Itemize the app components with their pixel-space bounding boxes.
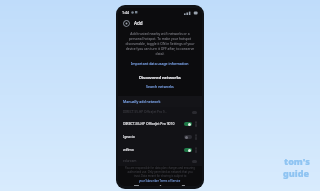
button[interactable]: Toggle on [184, 122, 192, 126]
button[interactable]: Account [122, 19, 130, 27]
staticText: Add trusted nearby wi-fi networks or a p… [125, 31, 195, 56]
button[interactable]: Manually add network [118, 96, 202, 107]
button[interactable]: your Subscriber Terms of Service [139, 179, 181, 183]
staticText: 1:44 [122, 10, 130, 15]
staticText: eduroam [123, 159, 137, 163]
staticText: Manually add network [123, 99, 161, 104]
staticText: Discovered networks [139, 75, 181, 80]
button[interactable]: DIRECT-55-HP OfficeJet Pro 9010 [118, 117, 202, 130]
button[interactable]: Toggle on [184, 148, 192, 152]
staticText: tom's [284, 155, 310, 167]
button[interactable]: Toggle off [184, 135, 192, 139]
staticText: Add [134, 20, 143, 26]
staticText: Ignacio [123, 134, 135, 139]
staticText: your Subscriber Terms of Service [139, 179, 181, 183]
staticText: guide [283, 167, 310, 179]
staticText: DIRECT-55-HP OfficeJet Pro 9010 [123, 121, 175, 126]
staticText: Important data usage information [131, 61, 189, 66]
staticText: wifimo [123, 147, 134, 152]
button[interactable]: wifimo [118, 143, 202, 156]
staticText: Search networks [146, 84, 174, 89]
button[interactable]: DIRECT-55-HP OfficeJet Pro 9… [118, 107, 202, 117]
staticText: DIRECT-55-HP OfficeJet Pro 9… [123, 110, 168, 114]
button[interactable]: Ignacio [118, 130, 202, 143]
button[interactable]: Search networks [146, 84, 174, 89]
button[interactable]: eduroam [118, 156, 202, 166]
staticText: You are responsible for data plan charge… [125, 166, 195, 178]
button[interactable]: Important data usage information [131, 61, 189, 66]
